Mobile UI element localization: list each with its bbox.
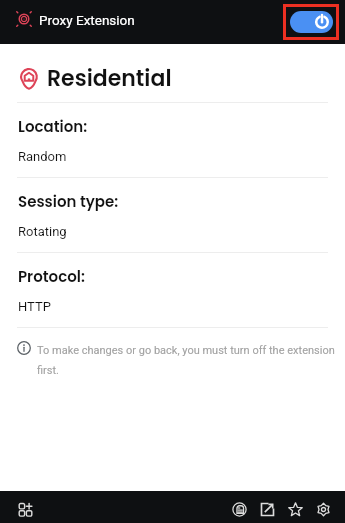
button[interactable]: Protocol: [0,253,345,327]
staticText: Random [18,149,67,164]
staticText: Location: [18,116,88,137]
staticText: Rotating [18,224,67,239]
staticText: Session type: [18,191,119,212]
staticText: HTTP [18,299,51,314]
staticText: To make changes or go back, you must tur… [37,344,337,377]
button[interactable]: Session type: [0,178,345,252]
staticText: Residential [47,63,172,94]
button[interactable]: Reading list [226,494,252,520]
button[interactable]: Bookmark [282,494,308,520]
button[interactable]: Extensions [12,494,38,520]
button[interactable]: Location: [0,103,345,177]
button[interactable]: Turn off extension [283,4,339,40]
staticText: Proxy Extension [39,12,135,28]
button[interactable]: Open in new tab [254,494,280,520]
staticText: Protocol: [18,266,85,287]
button[interactable]: Settings [310,494,336,520]
